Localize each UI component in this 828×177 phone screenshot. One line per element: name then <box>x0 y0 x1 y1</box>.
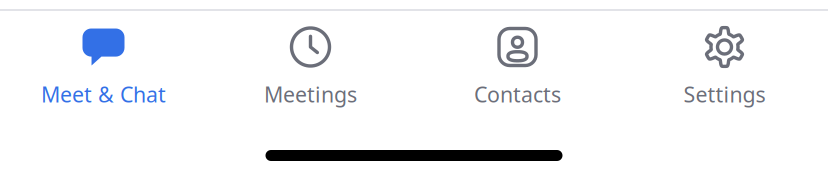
button[interactable]: Contacts <box>414 11 621 108</box>
button[interactable]: Settings <box>621 11 828 108</box>
button[interactable]: Meet & Chat <box>0 11 207 108</box>
staticText: Meet & Chat <box>41 80 166 108</box>
button[interactable]: Meetings <box>207 11 414 108</box>
staticText: Settings <box>683 80 765 108</box>
staticText: Contacts <box>474 80 561 108</box>
staticText: Meetings <box>264 80 357 108</box>
